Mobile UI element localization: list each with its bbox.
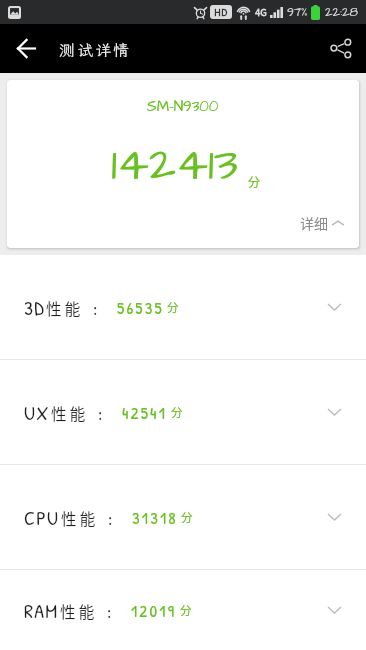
staticText: 97% [287, 4, 308, 21]
staticText: 分 [180, 602, 192, 619]
staticText: : [107, 598, 112, 624]
staticText: 性能 [60, 600, 98, 622]
staticText: UX [24, 399, 50, 426]
staticText: 42541 [122, 401, 168, 424]
staticText: RAM [24, 597, 59, 624]
staticText: : [108, 505, 113, 531]
staticText: 分 [167, 299, 179, 316]
staticText: 3D [24, 294, 45, 321]
staticText: 分 [171, 404, 183, 421]
staticText: : [93, 295, 98, 321]
staticText: 分 [248, 173, 261, 190]
staticText: 56535 [117, 296, 164, 319]
staticText: 性能 [51, 402, 89, 424]
staticText: 性能 [46, 297, 84, 319]
button[interactable]: Share [316, 24, 366, 73]
button[interactable]: Back [0, 24, 52, 73]
staticText: 12019 [131, 599, 177, 622]
button[interactable]: 3D [0, 255, 366, 359]
staticText: 142413 [111, 133, 238, 198]
button[interactable]: 详细 [296, 209, 348, 237]
staticText: : [98, 400, 103, 426]
staticText: SM-N9300 [147, 96, 219, 117]
staticText: 性能 [61, 507, 99, 529]
staticText: 22:28 [325, 3, 358, 21]
staticText: 测试详情 [59, 39, 132, 60]
staticText: 分 [181, 509, 193, 526]
button[interactable]: RAM [0, 570, 366, 650]
button[interactable]: UX [0, 360, 366, 464]
staticText: 详细 [300, 213, 328, 233]
staticText: 4G [255, 5, 267, 19]
button[interactable]: SM-N9300 [7, 80, 359, 248]
button[interactable]: CPU [0, 465, 366, 569]
staticText: 31318 [132, 506, 178, 529]
staticText: CPU [24, 504, 60, 531]
staticText: HD [214, 5, 228, 19]
